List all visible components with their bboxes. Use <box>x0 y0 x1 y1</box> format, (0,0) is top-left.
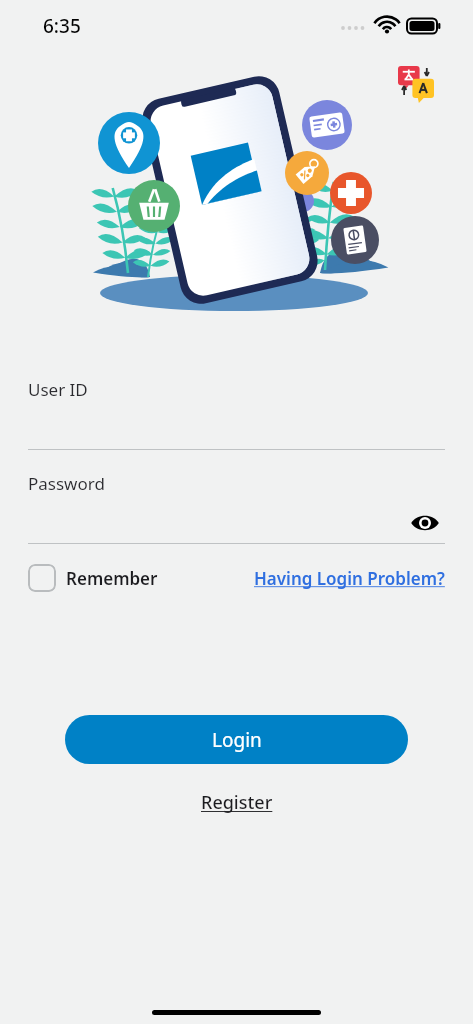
staticText: Login <box>212 727 262 753</box>
staticText: Having Login Problem? <box>254 567 445 590</box>
staticText: Password <box>28 472 105 495</box>
staticText: User ID <box>28 378 88 401</box>
button[interactable]: Having Login Problem? <box>254 567 445 590</box>
button[interactable]: Register <box>197 786 277 819</box>
staticText: Register <box>201 790 273 815</box>
button[interactable]: Login <box>65 715 408 764</box>
button[interactable]: Show password <box>405 503 445 543</box>
button[interactable]: Change language <box>398 66 434 98</box>
staticText: 6:35 <box>43 13 81 39</box>
staticText: Remember <box>66 567 158 590</box>
button[interactable]: Remember <box>28 564 158 592</box>
